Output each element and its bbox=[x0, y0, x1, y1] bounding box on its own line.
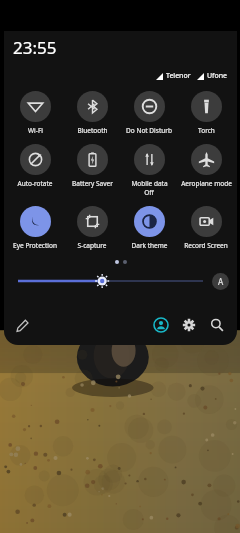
button[interactable]: Do Not Disturb bbox=[121, 90, 177, 136]
button[interactable]: Eye Protection bbox=[7, 205, 63, 251]
staticText: Battery Saver bbox=[72, 179, 113, 188]
other: S-capture bbox=[77, 206, 108, 237]
button[interactable]: Aeroplane mode bbox=[178, 143, 234, 189]
button[interactable]: Edit bbox=[12, 315, 32, 335]
staticText: Dark theme bbox=[131, 241, 168, 250]
button[interactable]: Battery Saver bbox=[64, 143, 120, 189]
button[interactable]: Torch bbox=[178, 90, 234, 136]
other: Torch bbox=[191, 91, 222, 122]
button[interactable] bbox=[18, 270, 203, 292]
button[interactable]: Search bbox=[207, 315, 227, 335]
staticText: Torch bbox=[198, 126, 215, 135]
button[interactable]: User bbox=[151, 315, 171, 335]
staticText: S-capture bbox=[77, 241, 107, 250]
button[interactable]: Settings bbox=[179, 315, 199, 335]
staticText: Wi-Fi bbox=[28, 126, 43, 135]
staticText: A bbox=[218, 276, 224, 287]
button[interactable]: S-capture bbox=[64, 205, 120, 251]
staticText: 23:55 bbox=[13, 36, 57, 59]
staticText: Mobile data bbox=[131, 179, 168, 188]
other: Do Not Disturb bbox=[134, 91, 165, 122]
other: Record Screen bbox=[191, 206, 222, 237]
button[interactable]: Record Screen bbox=[178, 205, 234, 251]
staticText: Eye Protection bbox=[13, 241, 57, 250]
button[interactable]: Bluetooth bbox=[64, 90, 120, 136]
other: Dark theme bbox=[134, 206, 165, 237]
button[interactable]: Wi-Fi bbox=[7, 90, 63, 136]
staticText: Off bbox=[144, 188, 154, 197]
other: Wi-Fi bbox=[20, 91, 51, 122]
other: Aeroplane mode bbox=[191, 144, 222, 175]
other: Eye Protection bbox=[20, 206, 51, 237]
other: Mobile data bbox=[134, 144, 165, 175]
staticText: Telenor bbox=[166, 71, 191, 81]
staticText: Record Screen bbox=[184, 241, 228, 250]
button[interactable]: Auto-rotate bbox=[7, 143, 63, 189]
button[interactable]: Mobile data bbox=[121, 143, 177, 198]
button[interactable]: Dark theme bbox=[121, 205, 177, 251]
staticText: Ufone bbox=[207, 71, 228, 81]
staticText: Auto-rotate bbox=[17, 179, 53, 188]
other: Auto-rotate bbox=[20, 144, 51, 175]
staticText: Do Not Disturb bbox=[126, 126, 172, 135]
button[interactable]: Auto brightness bbox=[212, 273, 229, 290]
staticText: Aeroplane mode bbox=[181, 179, 232, 188]
staticText: Bluetooth bbox=[77, 126, 108, 135]
other: Battery Saver bbox=[77, 144, 108, 175]
other: Bluetooth bbox=[77, 91, 108, 122]
